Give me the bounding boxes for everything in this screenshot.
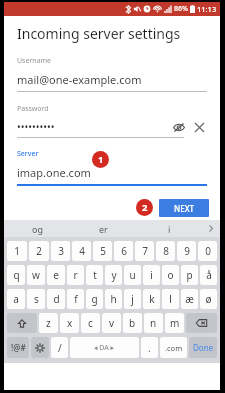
button[interactable]: i	[143, 265, 160, 285]
staticText: mail@one-example.com	[17, 72, 142, 87]
button[interactable]: l	[162, 289, 179, 309]
staticText: d	[53, 292, 60, 306]
button[interactable]: n	[144, 313, 163, 333]
button[interactable]: 4	[72, 241, 91, 261]
staticText: ø	[205, 292, 212, 306]
button[interactable]: a	[7, 289, 25, 309]
button[interactable]: t	[86, 265, 103, 285]
button[interactable]: 1	[7, 241, 27, 261]
staticText: n	[150, 316, 157, 330]
button[interactable]: !@#	[7, 337, 29, 358]
staticText: w	[32, 268, 40, 282]
button[interactable]: z	[39, 313, 58, 333]
staticText: i	[150, 268, 153, 282]
staticText: .com	[165, 343, 183, 353]
staticText: /	[58, 341, 62, 355]
staticText: f	[74, 292, 78, 306]
staticText: ◂ DA ▸	[94, 343, 115, 353]
button[interactable]: 9	[177, 241, 196, 261]
button[interactable]: e	[47, 265, 65, 285]
staticText: 6	[121, 244, 127, 258]
staticText: t	[93, 268, 97, 282]
button[interactable]: Clear password	[191, 119, 207, 135]
staticText: 11:13	[197, 4, 217, 14]
staticText: v	[109, 316, 115, 330]
staticText: y	[111, 268, 117, 282]
button[interactable]: Backspace	[186, 313, 217, 333]
button[interactable]: x	[60, 313, 79, 333]
button[interactable]: p	[181, 265, 198, 285]
button[interactable]: å	[200, 265, 217, 285]
button[interactable]: q	[7, 265, 25, 285]
staticText: z	[46, 316, 51, 330]
staticText: 2	[36, 244, 42, 258]
button[interactable]: 2	[29, 241, 49, 261]
button[interactable]: /	[51, 337, 68, 358]
button[interactable]: o	[162, 265, 179, 285]
staticText: u	[129, 268, 136, 282]
staticText: !@#	[11, 342, 26, 353]
staticText: ••••••••••	[17, 120, 171, 134]
button[interactable]: NEXT	[159, 199, 209, 217]
button[interactable]: .com	[160, 337, 187, 358]
staticText: er	[99, 223, 108, 235]
staticText: og	[32, 223, 43, 235]
button[interactable]: k	[143, 289, 160, 309]
staticText: 0	[205, 244, 211, 258]
staticText: p	[186, 268, 193, 282]
staticText: 86%	[174, 4, 188, 14]
button[interactable]: w	[27, 265, 45, 285]
staticText: o	[167, 268, 174, 282]
button[interactable]: 7	[135, 241, 154, 261]
button[interactable]: og	[4, 220, 70, 237]
button[interactable]: y	[105, 265, 122, 285]
staticText: 2	[142, 201, 148, 214]
button[interactable]: 8	[156, 241, 175, 261]
button[interactable]: 3	[51, 241, 70, 261]
button[interactable]: m	[165, 313, 184, 333]
button[interactable]: Show password	[171, 119, 187, 135]
staticText: 1	[98, 153, 104, 166]
button[interactable]: u	[124, 265, 141, 285]
button[interactable]: g	[86, 289, 103, 309]
button[interactable]: v	[102, 313, 121, 333]
button[interactable]: r	[67, 265, 84, 285]
button[interactable]: 0	[198, 241, 217, 261]
staticText: b	[129, 316, 136, 330]
staticText: 4	[79, 244, 85, 258]
button[interactable]: ø	[200, 289, 217, 309]
button[interactable]: er	[70, 220, 136, 237]
button[interactable]: 6	[114, 241, 133, 261]
button[interactable]: b	[123, 313, 142, 333]
staticText: s	[34, 292, 39, 306]
button[interactable]: Keyboard settings	[31, 337, 49, 358]
button[interactable]: Shift	[7, 313, 37, 333]
button[interactable]: s	[27, 289, 45, 309]
button[interactable]: Done	[189, 337, 217, 358]
staticText: 1	[14, 244, 20, 258]
staticText: k	[149, 292, 155, 306]
button[interactable]: c	[81, 313, 100, 333]
staticText: imap.one.com	[17, 165, 91, 180]
button[interactable]: More suggestions	[202, 220, 220, 237]
staticText: m	[170, 316, 180, 330]
button[interactable]: i	[136, 220, 202, 237]
staticText: g	[91, 292, 98, 306]
button[interactable]: æ	[181, 289, 198, 309]
button[interactable]: h	[105, 289, 122, 309]
staticText: j	[131, 292, 134, 306]
staticText: 8	[163, 244, 169, 258]
staticText: .	[148, 341, 151, 355]
button[interactable]: .	[141, 337, 158, 358]
button[interactable]: d	[47, 289, 65, 309]
staticText: x	[67, 316, 73, 330]
staticText: r	[73, 268, 78, 282]
staticText: NEXT	[174, 203, 195, 214]
staticText: c	[88, 316, 93, 330]
button[interactable]: f	[67, 289, 84, 309]
staticText: Username	[17, 56, 52, 66]
button[interactable]: 5	[93, 241, 112, 261]
button[interactable]: j	[124, 289, 141, 309]
button[interactable]: Space	[70, 337, 139, 358]
staticText: 9	[184, 244, 190, 258]
